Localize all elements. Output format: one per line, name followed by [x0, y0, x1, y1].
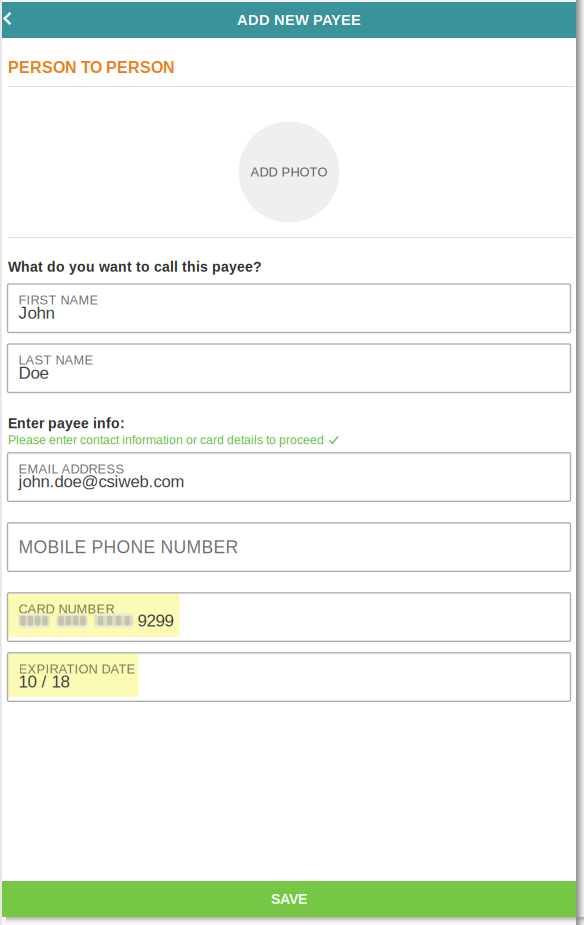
button[interactable]: CARD NUMBER [7, 593, 570, 641]
staticText: MOBILE PHONE NUMBER [18, 537, 238, 557]
staticText: CARD NUMBER [18, 602, 114, 616]
staticText: SAVE [271, 891, 307, 907]
staticText: EMAIL ADDRESS [18, 462, 124, 476]
staticText: PERSON TO PERSON [8, 59, 175, 76]
staticText: Please enter contact information or card… [8, 433, 324, 447]
staticText: FIRST NAME [18, 293, 98, 307]
button[interactable]: FIRST NAME [7, 284, 570, 332]
button[interactable]: EXPIRATION DATE [7, 653, 570, 701]
staticText: LAST NAME [18, 353, 93, 367]
staticText: ADD NEW PAYEE [237, 12, 361, 28]
button[interactable]: EMAIL ADDRESS [7, 453, 570, 501]
staticText: john.doe@csiweb.com [18, 472, 184, 491]
button[interactable]: ADD PHOTO [2, 87, 576, 237]
button[interactable]: LAST NAME [7, 344, 570, 392]
button[interactable]: MOBILE PHONE NUMBER [7, 523, 570, 571]
staticText: Doe [18, 363, 48, 382]
button[interactable]: SAVE [2, 881, 576, 917]
staticText: EXPIRATION DATE [18, 662, 135, 676]
staticText: Enter payee info: [8, 415, 125, 431]
staticText: ADD PHOTO [250, 165, 327, 179]
staticText: What do you want to call this payee? [8, 259, 262, 275]
staticText: 9299 [137, 611, 173, 630]
button[interactable]: Back [2, 2, 20, 38]
staticText: John [18, 303, 54, 322]
staticText: 10 / 18 [18, 672, 69, 691]
